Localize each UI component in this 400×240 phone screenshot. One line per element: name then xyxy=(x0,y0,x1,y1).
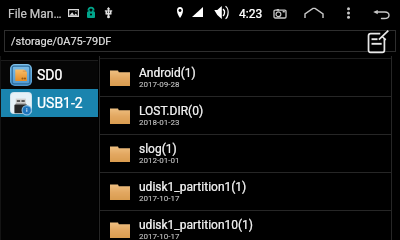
staticText: 2017-10-17 xyxy=(139,194,180,203)
button[interactable]: Edit path xyxy=(365,29,389,53)
staticText: /storage/0A75-79DF xyxy=(11,35,112,48)
button[interactable]: More options xyxy=(336,1,360,25)
staticText: Android(1) xyxy=(139,66,196,80)
button[interactable]: slog(1) xyxy=(99,135,391,172)
staticText: slog(1) xyxy=(139,142,177,156)
button[interactable]: LOST.DIR(0) xyxy=(99,97,391,134)
staticText: 2017-09-28 xyxy=(139,80,180,89)
button[interactable]: udisk1_partition1(1) xyxy=(99,173,391,210)
button[interactable]: udisk1_partition10(1) xyxy=(99,211,391,240)
button[interactable]: Back xyxy=(369,2,393,26)
staticText: 2018-01-23 xyxy=(139,118,180,127)
button[interactable]: Screenshot xyxy=(268,1,292,25)
staticText: File Man… xyxy=(8,7,62,21)
button[interactable]: Android(1) xyxy=(99,59,391,96)
staticText: USB1-2 xyxy=(37,95,83,111)
button[interactable]: USB1-2 xyxy=(0,89,98,117)
button[interactable]: SD0 xyxy=(0,61,98,89)
staticText: SD0 xyxy=(37,67,63,83)
staticText: 2017-10-17 xyxy=(139,232,180,240)
staticText: 4:23 xyxy=(239,7,263,21)
button[interactable]: /storage/0A75-79DF xyxy=(4,30,396,52)
staticText: udisk1_partition1(1) xyxy=(139,180,247,194)
staticText: LOST.DIR(0) xyxy=(139,104,204,118)
staticText: udisk1_partition10(1) xyxy=(139,218,254,232)
staticText: 2012-01-01 xyxy=(139,156,180,165)
button[interactable]: Home xyxy=(302,1,326,25)
